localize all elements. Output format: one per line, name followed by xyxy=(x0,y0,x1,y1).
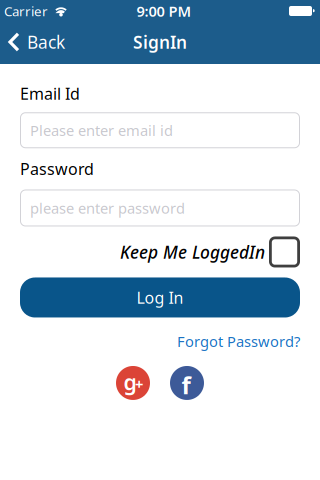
button[interactable]: Sign in with Facebook xyxy=(170,366,204,400)
staticText: Back xyxy=(27,30,65,53)
button[interactable]: Sign in with Google xyxy=(116,366,150,400)
staticText: 9:00 PM xyxy=(136,1,191,21)
staticText: Please enter email id xyxy=(30,120,173,140)
staticText: Email Id xyxy=(20,83,80,104)
staticText: SignIn xyxy=(133,30,187,53)
staticText: Log In xyxy=(136,287,183,308)
staticText: Password xyxy=(20,158,94,179)
button[interactable]: Back xyxy=(0,31,65,54)
staticText: please enter password xyxy=(30,198,185,218)
staticText: f xyxy=(181,369,190,401)
staticText: Forgot Password? xyxy=(177,331,300,351)
button[interactable]: Keep Me LoggedIn xyxy=(269,236,300,267)
button[interactable]: Forgot Password? xyxy=(177,331,300,351)
staticText: Carrier xyxy=(4,2,48,20)
staticText: g xyxy=(123,368,136,396)
staticText: + xyxy=(135,374,143,394)
staticText: Keep Me LoggedIn xyxy=(120,240,265,263)
button[interactable]: Log In xyxy=(20,277,300,317)
